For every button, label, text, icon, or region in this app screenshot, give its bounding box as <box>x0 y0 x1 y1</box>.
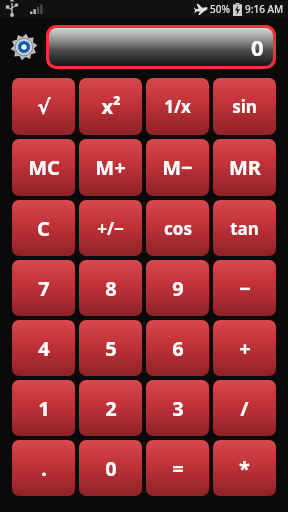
button[interactable]: C <box>12 200 75 256</box>
button[interactable]: = <box>146 440 209 496</box>
staticText: / <box>240 395 249 422</box>
staticText: 8 <box>105 275 117 302</box>
button[interactable]: + <box>213 320 276 376</box>
button[interactable]: M− <box>146 139 209 196</box>
button[interactable]: 1 <box>12 380 75 436</box>
button[interactable]: cos <box>146 200 209 256</box>
staticText: 2 <box>105 395 117 422</box>
button[interactable]: Settings <box>10 33 38 61</box>
staticText: M+ <box>95 154 126 181</box>
button[interactable]: 0 <box>49 28 273 66</box>
button[interactable]: / <box>213 380 276 436</box>
button[interactable]: +/− <box>79 200 142 256</box>
staticText: 6 <box>172 335 184 362</box>
button[interactable]: sin <box>213 78 276 135</box>
staticText: 0 <box>251 32 264 62</box>
button[interactable]: 0 <box>79 440 142 496</box>
staticText: 3 <box>172 395 184 422</box>
staticText: 0 <box>105 455 117 482</box>
staticText: 9 <box>172 275 184 302</box>
staticText: MC <box>28 154 60 181</box>
staticText: 5 <box>105 335 117 362</box>
button[interactable]: 9 <box>146 260 209 316</box>
button[interactable]: . <box>12 440 75 496</box>
staticText: 1/x <box>164 95 191 118</box>
button[interactable]: MC <box>12 139 75 196</box>
button[interactable]: x² <box>79 78 142 135</box>
button[interactable]: 1/x <box>146 78 209 135</box>
staticText: √ <box>37 95 51 118</box>
button[interactable]: * <box>213 440 276 496</box>
button[interactable]: − <box>213 260 276 316</box>
staticText: cos <box>164 217 192 240</box>
staticText: * <box>239 455 250 482</box>
staticText: = <box>172 455 184 482</box>
button[interactable]: 5 <box>79 320 142 376</box>
button[interactable]: M+ <box>79 139 142 196</box>
staticText: . <box>41 455 47 482</box>
staticText: sin <box>232 95 257 118</box>
button[interactable]: tan <box>213 200 276 256</box>
staticText: x² <box>101 93 121 120</box>
button[interactable]: 6 <box>146 320 209 376</box>
staticText: tan <box>230 217 259 240</box>
staticText: 7 <box>38 275 50 302</box>
button[interactable]: √ <box>12 78 75 135</box>
button[interactable]: 3 <box>146 380 209 436</box>
button[interactable]: MR <box>213 139 276 196</box>
staticText: MR <box>229 154 261 181</box>
button[interactable]: 4 <box>12 320 75 376</box>
staticText: + <box>239 335 251 362</box>
staticText: − <box>239 275 251 302</box>
staticText: 4 <box>38 335 50 362</box>
button[interactable]: 7 <box>12 260 75 316</box>
button[interactable]: 8 <box>79 260 142 316</box>
button[interactable]: 2 <box>79 380 142 436</box>
staticText: 1 <box>38 395 50 422</box>
staticText: +/− <box>97 217 124 240</box>
staticText: 50% <box>210 2 230 16</box>
staticText: C <box>37 215 50 242</box>
staticText: 9:16 AM <box>245 2 284 16</box>
staticText: M− <box>162 154 193 181</box>
